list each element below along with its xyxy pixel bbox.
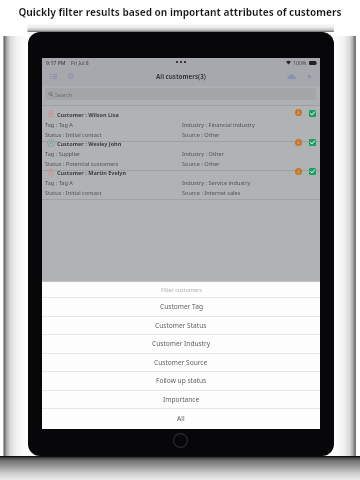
staticText: Industry : Financial industry — [182, 121, 255, 129]
button[interactable]: Customer : Wilson Lisa — [42, 105, 320, 141]
staticText: 9:17 PM — [46, 59, 66, 66]
staticText: 100% — [293, 59, 307, 66]
staticText: Customer : Wesley John — [57, 140, 122, 147]
staticText: Industry : Other — [182, 150, 224, 158]
staticText: Importance — [163, 395, 200, 404]
staticText: All — [177, 414, 185, 423]
staticText: Customer : Martin Evelyn — [57, 169, 127, 176]
staticText: Tag : Tag A — [45, 179, 73, 187]
staticText: Follow up status — [156, 376, 207, 385]
staticText: Source : Other — [182, 131, 220, 139]
staticText: Customer : Wilson Lisa — [57, 111, 119, 118]
button[interactable]: Customer Source — [42, 353, 320, 371]
staticText: Source : Other — [182, 160, 220, 168]
staticText: Customer Industry — [152, 339, 211, 348]
button[interactable]: Follow up status — [42, 371, 320, 389]
staticText: Status : Initial contact — [45, 131, 102, 139]
button[interactable]: Add — [302, 69, 316, 83]
button[interactable]: Search — [45, 88, 316, 100]
button[interactable]: Customer : Wesley John — [42, 141, 320, 170]
staticText: Customer Tag — [160, 302, 203, 311]
staticText: Customer Status — [155, 321, 207, 330]
button[interactable]: All — [42, 408, 320, 428]
button[interactable]: Customer Status — [42, 316, 320, 334]
staticText: Industry : Service industry — [182, 179, 251, 187]
staticText: Tag : Supplier — [45, 150, 81, 158]
button[interactable]: Customer : Martin Evelyn — [42, 170, 320, 199]
staticText: Status : Potential customers — [45, 160, 119, 168]
button[interactable]: Sync — [284, 69, 298, 83]
staticText: Fri Jul 8 — [71, 59, 89, 66]
button[interactable]: Customer Tag — [42, 297, 320, 315]
button[interactable]: Importance — [42, 390, 320, 408]
button[interactable]: Recent — [61, 67, 81, 85]
button[interactable]: Customer Industry — [42, 334, 320, 352]
button[interactable]: List view — [43, 67, 64, 85]
staticText: Tag : Tag A — [45, 121, 73, 129]
staticText: Source : Internet sales — [182, 189, 241, 197]
staticText: Filter customers — [161, 286, 202, 293]
staticText: Customer Source — [154, 358, 208, 367]
staticText: Status : Initial contact — [45, 189, 102, 197]
staticText: Search — [55, 91, 73, 98]
staticText: All customers(3) — [156, 72, 206, 80]
staticText: Quickly filter results based on importan… — [0, 5, 360, 19]
